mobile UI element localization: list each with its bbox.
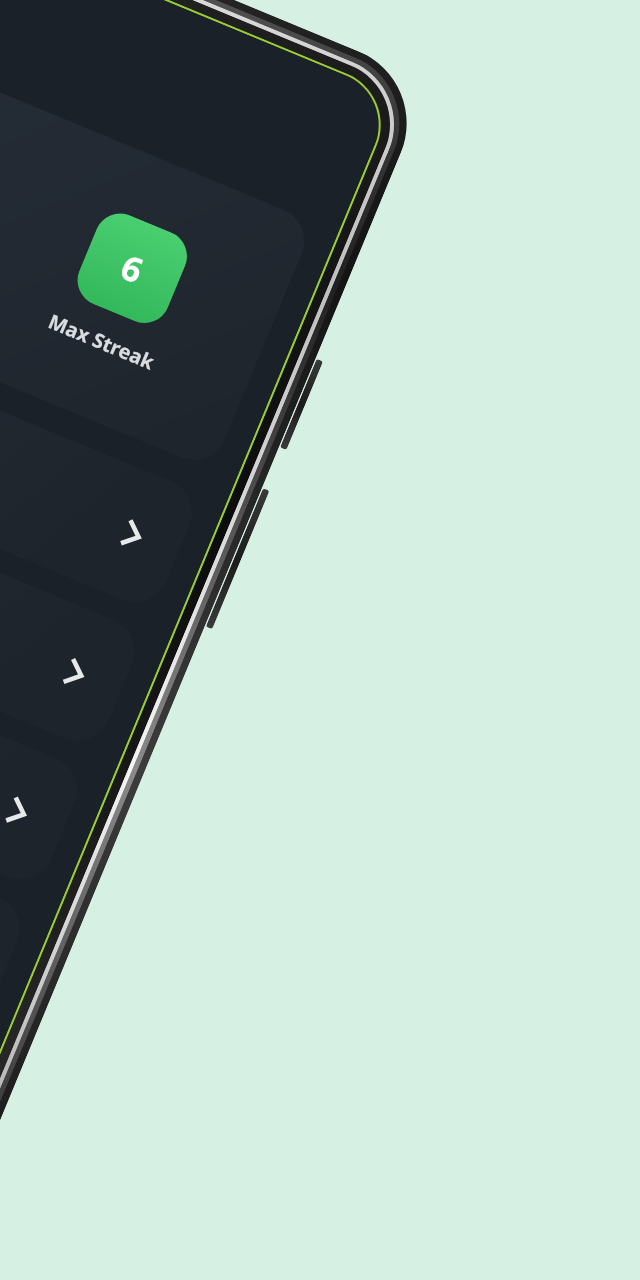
button[interactable]: 3: [0, 18, 315, 470]
button[interactable]: One Day: [0, 428, 145, 751]
button[interactable]: Progressive Mode: [0, 706, 30, 1028]
staticText: 6: [114, 243, 150, 293]
staticText: Max Streak: [44, 307, 159, 376]
button[interactable]: Detail: [0, 290, 202, 612]
button[interactable]: Custom Mode: [0, 567, 87, 890]
